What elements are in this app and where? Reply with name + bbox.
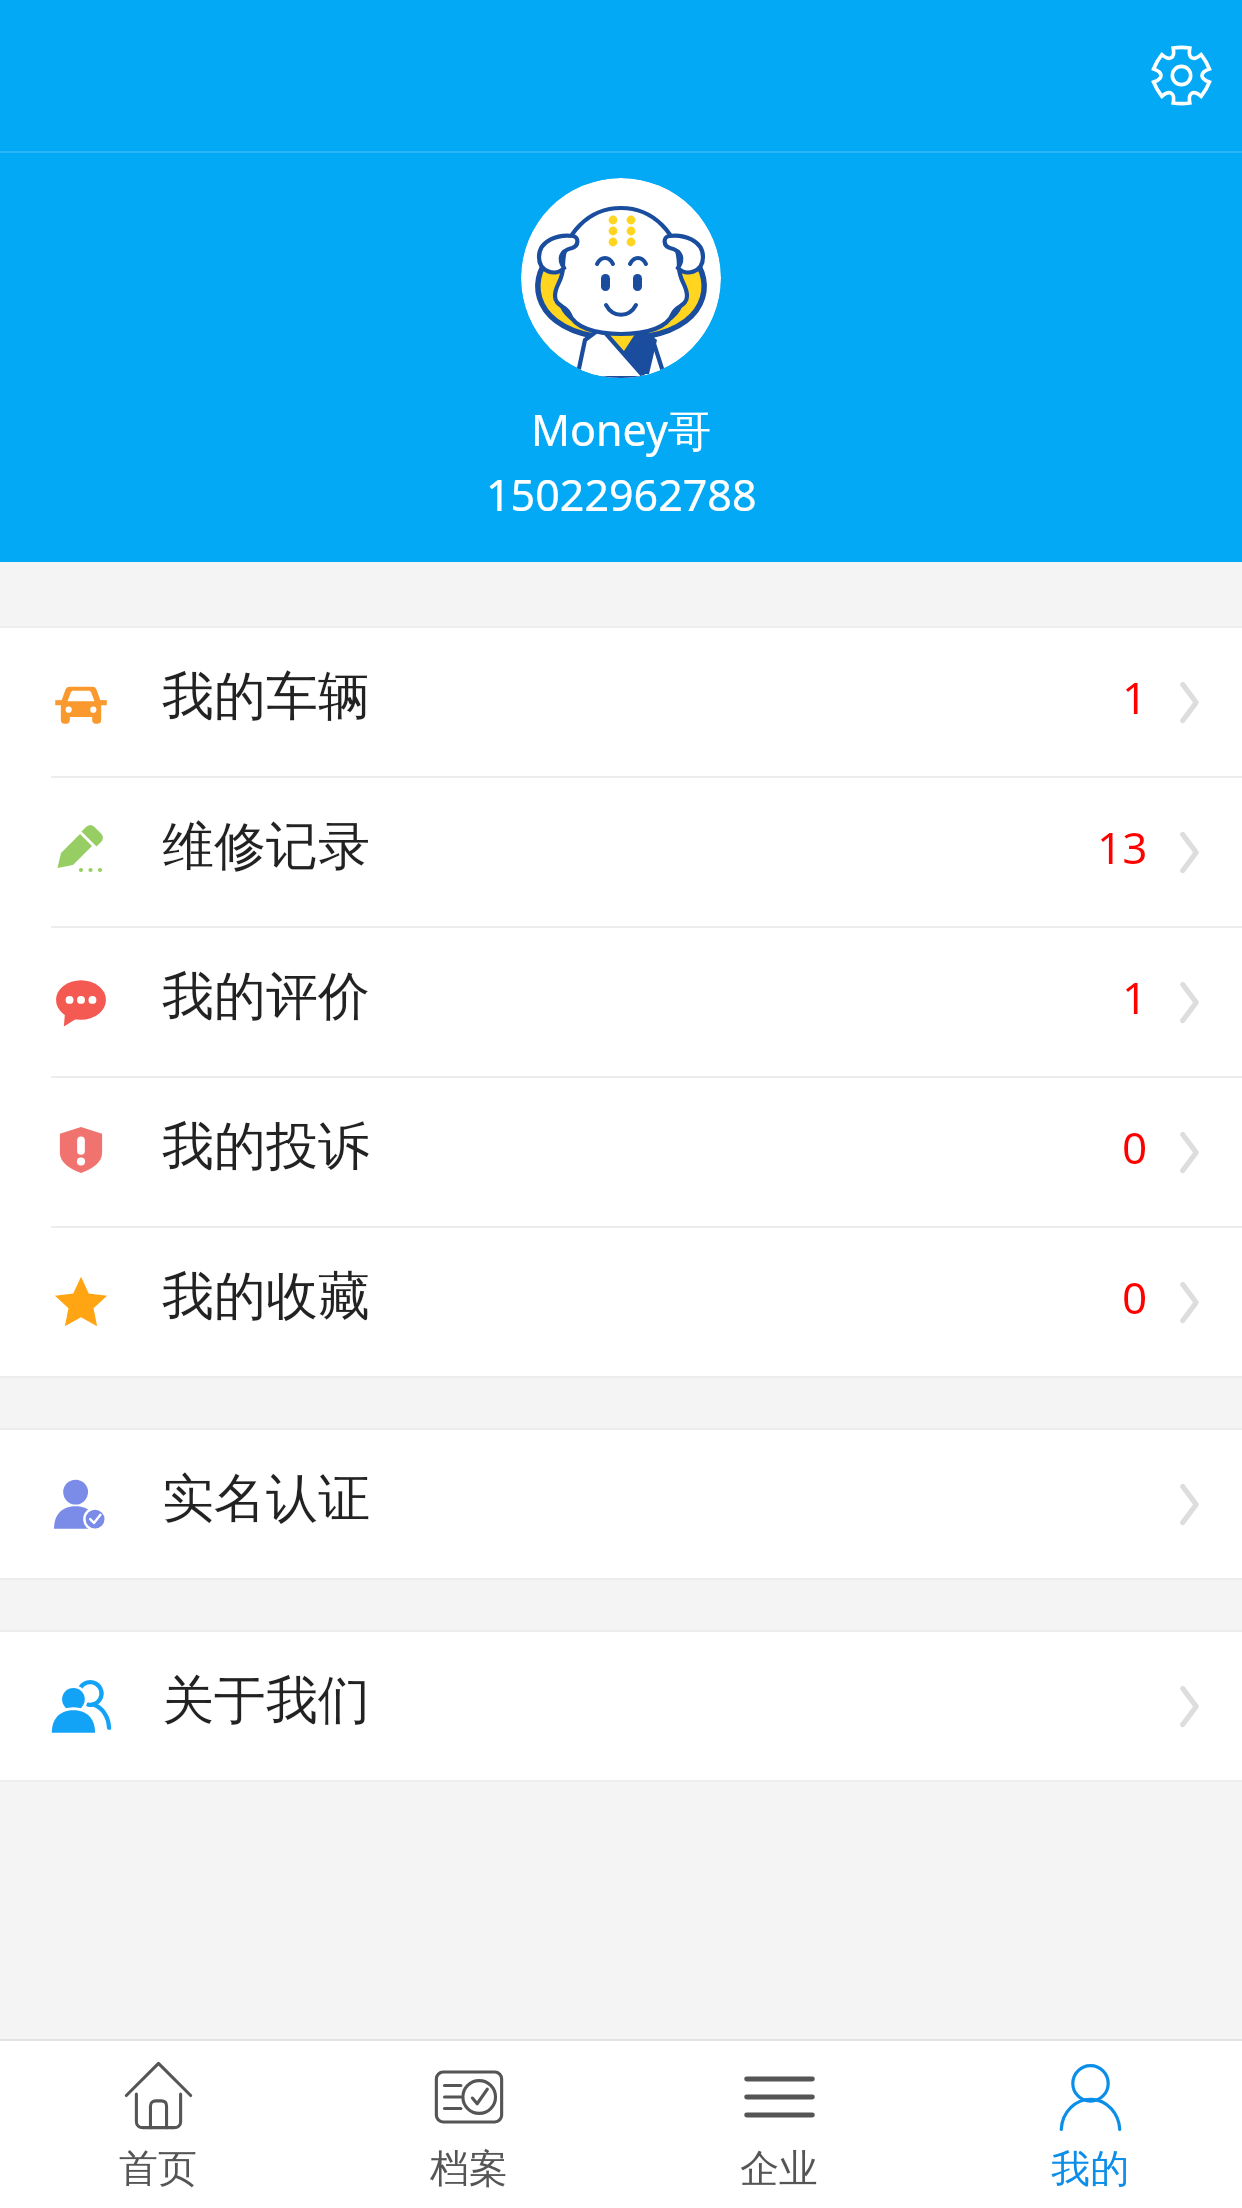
staticText: 15022962788 — [486, 465, 757, 524]
button[interactable]: Settings — [1120, 0, 1242, 147]
other: Home — [125, 2062, 192, 2130]
staticText: 档案 — [430, 2144, 508, 2193]
staticText: 我的车辆 — [162, 664, 370, 730]
other: Profile — [1060, 2062, 1121, 2131]
staticText: 1 — [1122, 967, 1148, 1027]
button[interactable]: 关于我们 — [0, 1632, 1242, 1780]
button[interactable]: Enterprise — [621, 2041, 931, 2208]
staticText: 关于我们 — [162, 1668, 370, 1734]
button[interactable]: Profile — [932, 2041, 1242, 2208]
button[interactable]: Home — [0, 2041, 310, 2208]
staticText: 实名认证 — [162, 1466, 370, 1532]
staticText: 企业 — [740, 2144, 818, 2193]
staticText: 维修记录 — [162, 814, 370, 880]
button[interactable]: 我的收藏 — [0, 1228, 1242, 1376]
staticText: 1 — [1122, 667, 1148, 727]
button[interactable]: 我的投诉 — [0, 1078, 1242, 1228]
button[interactable]: 维修记录 — [0, 778, 1242, 928]
other: Records — [435, 2071, 503, 2123]
staticText: 我的收藏 — [162, 1264, 370, 1330]
staticText: 我的 — [1051, 2144, 1129, 2193]
staticText: 13 — [1097, 817, 1148, 877]
other: Enterprise — [746, 2076, 813, 2118]
staticText: 0 — [1122, 1267, 1148, 1327]
button[interactable]: 我的评价 — [0, 928, 1242, 1078]
staticText: 我的投诉 — [162, 1114, 370, 1180]
button[interactable]: Records — [311, 2041, 621, 2208]
staticText: 0 — [1122, 1117, 1148, 1177]
staticText: Money哥 — [531, 400, 711, 459]
button[interactable]: 我的车辆 — [0, 628, 1242, 778]
staticText: 我的评价 — [162, 964, 370, 1030]
staticText: 首页 — [119, 2144, 197, 2193]
button[interactable]: 实名认证 — [0, 1430, 1242, 1578]
